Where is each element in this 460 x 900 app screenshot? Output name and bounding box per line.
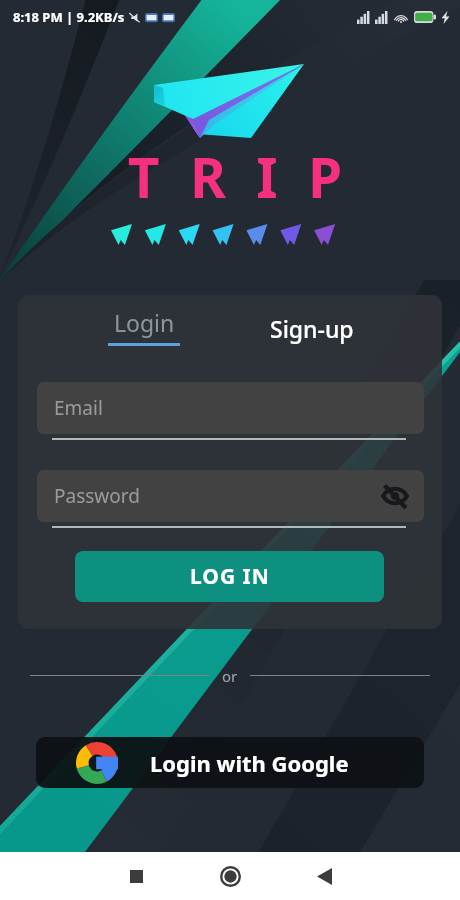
staticText: 8:18 PM | 9.2KB/s [13,8,125,26]
button[interactable]: Login with Google [36,737,424,788]
button[interactable]: Back [296,852,352,900]
button[interactable]: Password [37,470,424,522]
staticText: Password [54,483,140,509]
button[interactable]: Login [56,299,232,353]
staticText: Login with Google [150,748,349,778]
staticText: Email [54,395,103,421]
staticText: Sign-up [270,313,354,344]
staticText: T R I P [9,139,460,214]
button[interactable]: Sign-up [224,299,400,349]
staticText: or [222,666,238,686]
button[interactable]: LOG IN [75,551,384,602]
button[interactable]: Home [202,852,258,900]
button[interactable]: Recents [108,852,164,900]
staticText: Login [114,307,175,338]
button[interactable]: Email [37,382,424,434]
staticText: LOG IN [190,562,270,591]
button[interactable]: Show password [380,481,410,511]
